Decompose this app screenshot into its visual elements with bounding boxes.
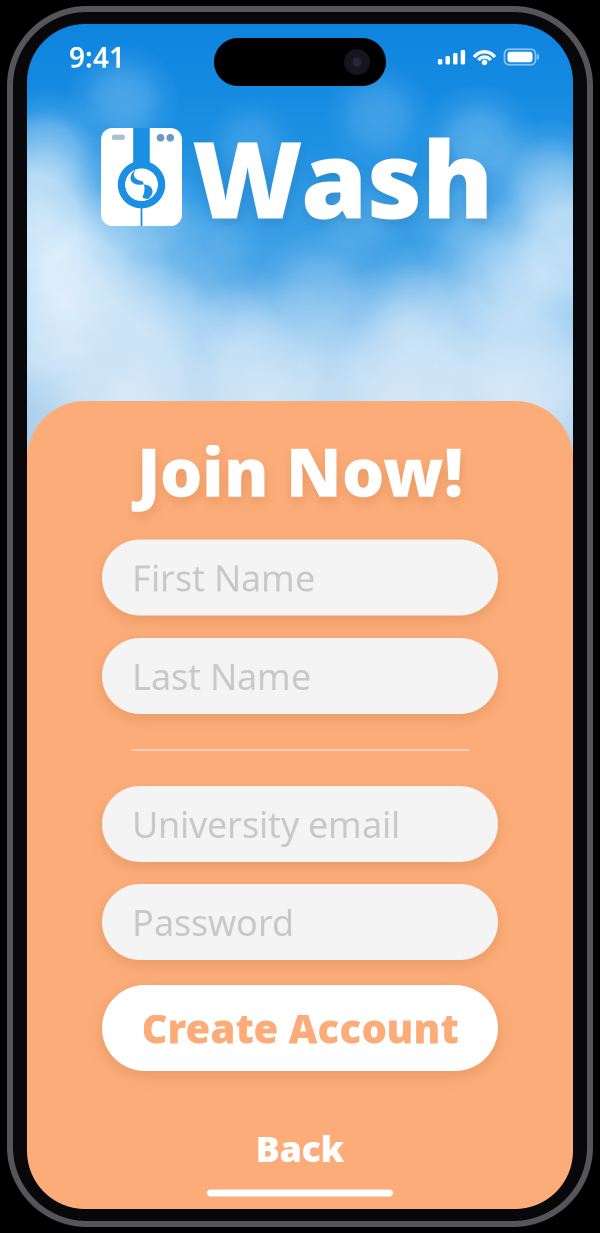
staticText: Join Now! — [137, 427, 463, 515]
button[interactable]: Last Name — [102, 638, 498, 714]
staticText: Last Name — [132, 652, 311, 700]
button[interactable]: Create Account — [102, 985, 498, 1071]
button[interactable]: Password — [102, 884, 498, 960]
button[interactable]: First Name — [102, 539, 498, 615]
staticText: First Name — [132, 554, 315, 601]
staticText: Back — [255, 1124, 344, 1172]
button[interactable]: Back — [215, 1112, 384, 1184]
staticText: 9:41 — [69, 38, 125, 76]
staticText: Create Account — [141, 1001, 458, 1054]
button[interactable]: University email — [102, 786, 498, 862]
staticText: Wash — [192, 106, 493, 248]
staticText: University email — [132, 800, 400, 848]
staticText: Password — [132, 898, 294, 946]
